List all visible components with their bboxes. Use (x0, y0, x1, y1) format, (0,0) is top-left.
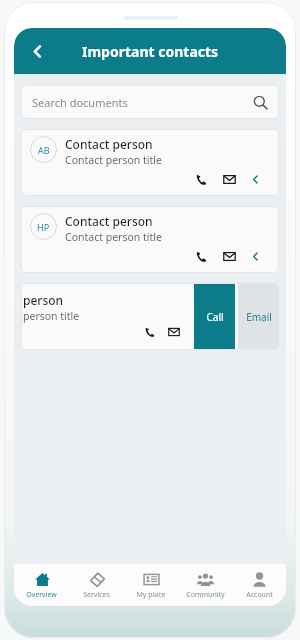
staticText: person title (23, 309, 80, 323)
button[interactable]: Community (178, 564, 232, 606)
staticText: Call (206, 310, 224, 324)
button[interactable]: Call (141, 323, 159, 341)
button[interactable]: Call (194, 283, 235, 350)
staticText: Contact person (65, 136, 153, 152)
staticText: Contact person title (65, 230, 162, 244)
button[interactable]: Email (219, 169, 239, 189)
staticText: Community (186, 590, 225, 600)
button[interactable]: Account (232, 564, 286, 606)
staticText: Email (246, 310, 272, 324)
button[interactable]: Services (69, 564, 124, 606)
staticText: Account (246, 590, 273, 600)
staticText: Overview (26, 590, 57, 600)
button[interactable]: HP (21, 206, 279, 273)
button[interactable]: Email (219, 246, 239, 266)
button[interactable]: Expand actions (247, 248, 263, 264)
button[interactable]: AB (21, 129, 279, 196)
button[interactable]: My place (124, 564, 178, 606)
staticText: Important contacts (82, 42, 219, 61)
button[interactable]: Expand actions (247, 171, 263, 187)
staticText: Search documents (32, 95, 128, 110)
staticText: AB (38, 144, 50, 156)
staticText: HP (37, 221, 50, 233)
button[interactable]: Call (191, 169, 211, 189)
staticText: Services (83, 590, 110, 600)
staticText: Contact person title (65, 153, 162, 167)
button[interactable]: Email (238, 283, 279, 350)
button[interactable]: Search documents (21, 85, 279, 119)
button[interactable]: Collapse actions (189, 324, 205, 340)
button[interactable]: Overview (14, 564, 69, 606)
staticText: person (23, 292, 64, 308)
button[interactable]: Call (191, 246, 211, 266)
staticText: Contact person (65, 213, 153, 229)
button[interactable]: Email (165, 323, 183, 341)
staticText: My place (136, 590, 166, 600)
button[interactable]: Back (20, 34, 54, 68)
